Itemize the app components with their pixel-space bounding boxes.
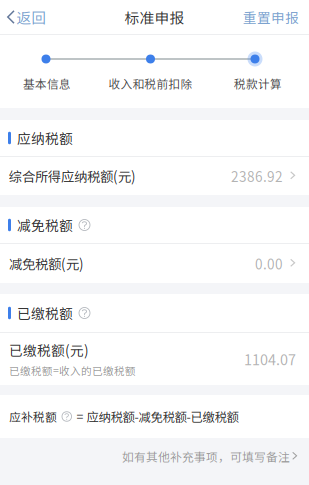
staticText: = 应纳税额-减免税额-已缴税额 xyxy=(76,408,238,425)
staticText: 如有其他补充事项，可填写备注 xyxy=(122,448,290,465)
staticText: 综合所得应纳税额(元) xyxy=(9,166,136,186)
staticText: 应补税额 xyxy=(9,408,57,425)
button[interactable]: 减免税额(元) xyxy=(0,244,309,283)
staticText: 已缴税额(元) xyxy=(9,340,89,360)
staticText: 1104.07 xyxy=(244,349,296,369)
staticText: 重置申报 xyxy=(243,7,299,27)
staticText: 收入和税前扣除 xyxy=(108,75,192,92)
staticText: 返回 xyxy=(16,6,46,28)
button[interactable]: 综合所得应纳税额(元) xyxy=(0,157,309,195)
staticText: 0.00 xyxy=(255,254,283,273)
staticText: 税款计算 xyxy=(234,75,282,92)
staticText: 减免税额(元) xyxy=(9,254,84,273)
staticText: 已缴税额=收入的已缴税额 xyxy=(9,363,136,378)
staticText: 基本信息 xyxy=(23,75,71,92)
staticText: 标准申报 xyxy=(124,6,184,28)
button[interactable]: 如有其他补充事项，可填写备注 xyxy=(0,438,309,475)
staticText: 已缴税额 xyxy=(17,303,73,323)
staticText: 减免税额 xyxy=(17,215,73,235)
staticText: 2386.92 xyxy=(231,166,283,186)
button[interactable]: 返回 xyxy=(0,0,46,34)
staticText: 应纳税额 xyxy=(17,128,73,148)
button[interactable]: 重置申报 xyxy=(243,1,309,33)
